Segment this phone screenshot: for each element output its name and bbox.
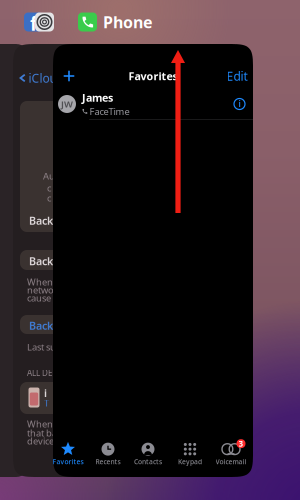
staticText: Favorites bbox=[128, 69, 177, 83]
staticText: Phone bbox=[103, 11, 153, 33]
staticText: that ba bbox=[27, 427, 57, 439]
button[interactable]: Favorites bbox=[46, 436, 90, 466]
button[interactable]: Keypad bbox=[168, 436, 212, 466]
staticText: i bbox=[44, 386, 47, 400]
staticText: When n bbox=[27, 276, 61, 288]
staticText: 3 bbox=[238, 438, 243, 449]
button[interactable]: Edit bbox=[224, 63, 250, 89]
staticText: device. bbox=[27, 435, 57, 447]
button[interactable]: Contacts bbox=[126, 436, 170, 466]
staticText: James bbox=[82, 90, 113, 105]
button[interactable]: JW bbox=[53, 89, 253, 120]
staticText: ALL DE bbox=[27, 368, 52, 378]
button[interactable]: Recents bbox=[86, 436, 130, 466]
staticText: Keypad bbox=[178, 457, 202, 466]
button[interactable]: Add favorite bbox=[56, 63, 82, 89]
button[interactable]: iCloud bbox=[19, 70, 65, 86]
staticText: c bbox=[47, 182, 51, 194]
staticText: FaceTime bbox=[89, 105, 129, 117]
staticText: iCloud bbox=[28, 70, 63, 86]
staticText: i bbox=[238, 99, 240, 109]
staticText: Contacts bbox=[134, 457, 162, 466]
staticText: network bbox=[27, 284, 63, 296]
staticText: Back bbox=[29, 213, 53, 228]
staticText: Edit bbox=[226, 68, 247, 84]
staticText: Favorites bbox=[52, 457, 83, 466]
staticText: Last su bbox=[27, 341, 56, 353]
staticText: Recents bbox=[95, 457, 120, 466]
staticText: Back bbox=[29, 318, 53, 333]
staticText: c bbox=[47, 192, 51, 204]
staticText: cause y bbox=[27, 292, 58, 304]
staticText: f bbox=[30, 11, 37, 36]
staticText: T bbox=[44, 397, 49, 409]
button[interactable]: 3 bbox=[209, 436, 253, 466]
staticText: When y bbox=[27, 418, 60, 430]
staticText: Back bbox=[29, 254, 53, 268]
staticText: Aut bbox=[43, 170, 58, 182]
staticText: Voicemail bbox=[215, 457, 246, 466]
staticText: JW bbox=[61, 98, 73, 110]
